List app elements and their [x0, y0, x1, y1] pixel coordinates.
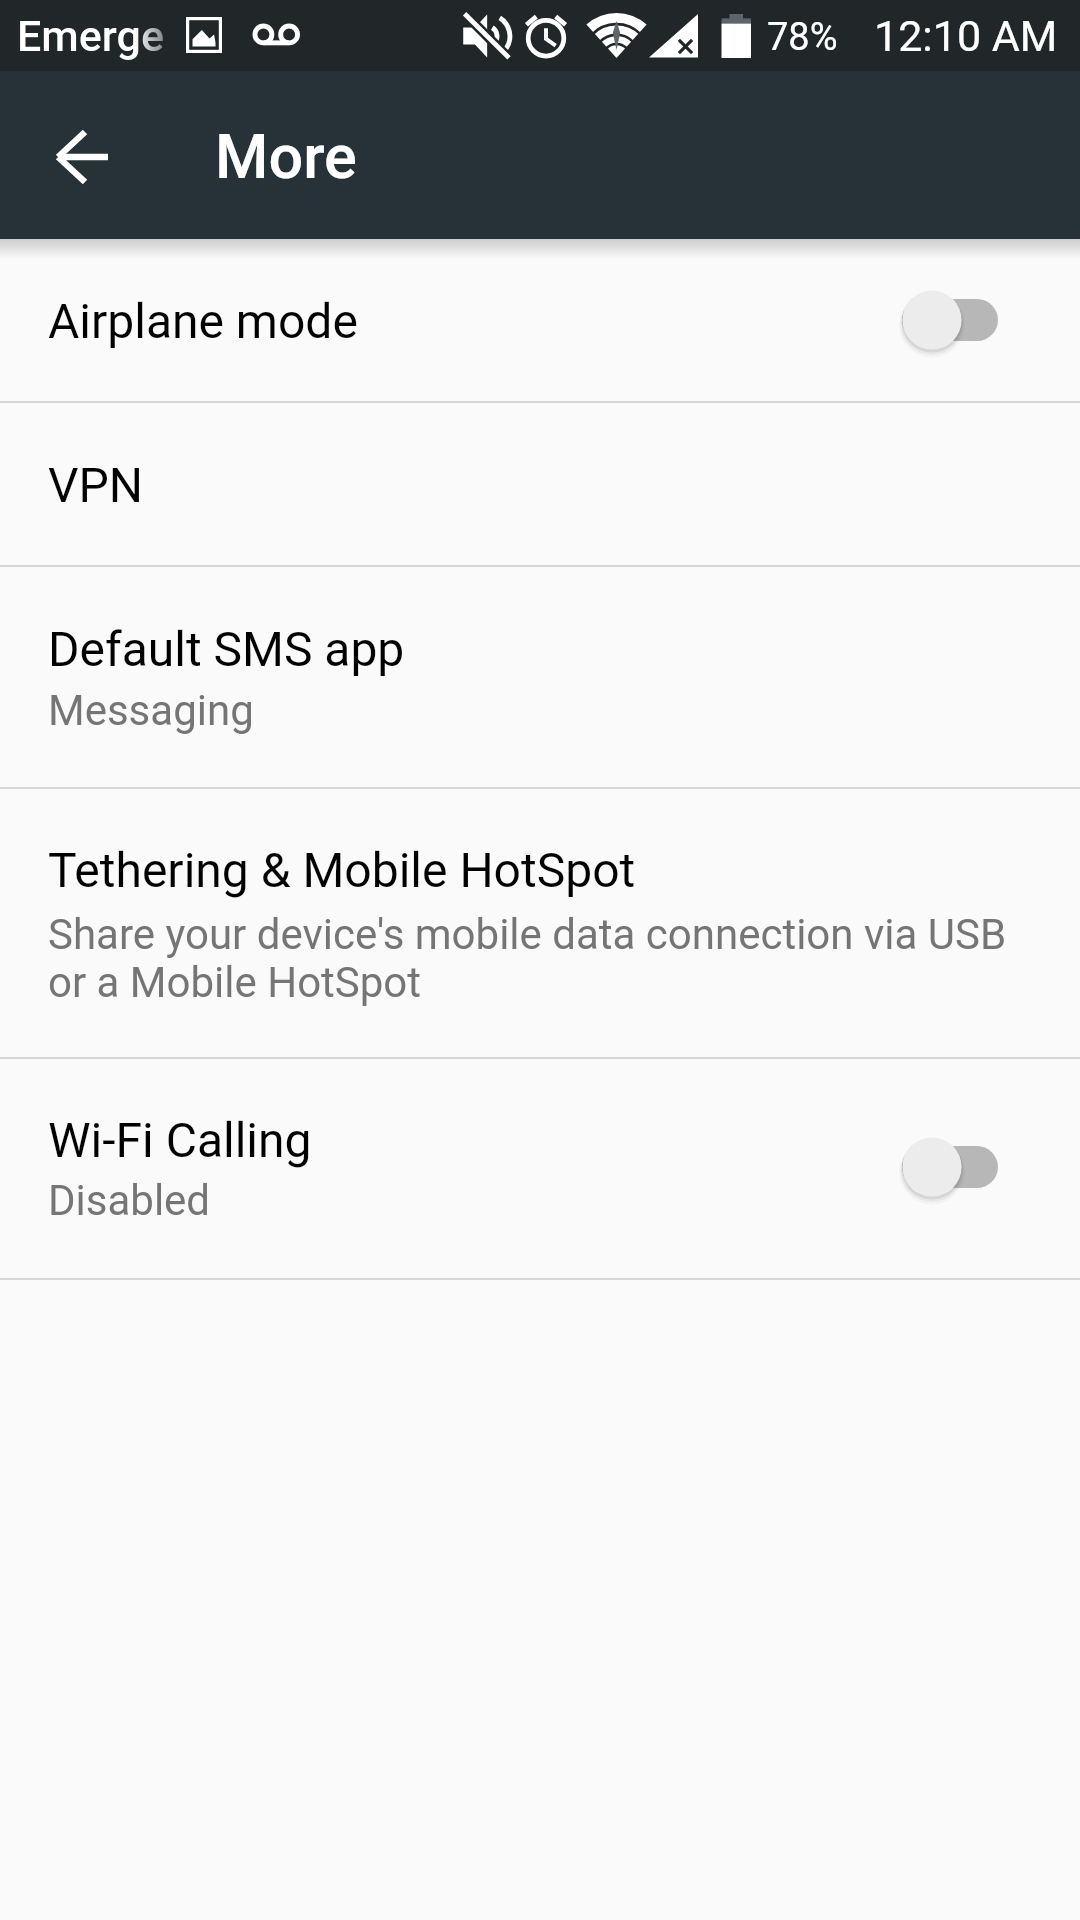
button[interactable]: Toggle: [887, 272, 1013, 368]
button[interactable]: Default SMS app: [0, 567, 1080, 787]
button[interactable]: Toggle: [887, 1119, 1013, 1215]
staticText: 12:10 AM: [874, 11, 1058, 61]
staticText: Share your device's mobile data connecti…: [48, 910, 1013, 1007]
staticText: Messaging: [48, 686, 254, 735]
staticText: More: [215, 121, 357, 192]
staticText: Default SMS app: [48, 621, 405, 677]
button[interactable]: Navigate up: [36, 111, 128, 203]
button[interactable]: Tethering & Mobile HotSpot: [0, 789, 1080, 1057]
staticText: Airplane mode: [48, 293, 358, 349]
staticText: Wi-Fi Calling: [48, 1112, 312, 1168]
staticText: 78%: [767, 15, 838, 60]
staticText: Disabled: [48, 1176, 211, 1225]
button[interactable]: Airplane mode: [0, 239, 1080, 401]
button[interactable]: Wi-Fi Calling: [0, 1059, 1080, 1278]
button[interactable]: VPN: [0, 403, 1080, 565]
staticText: Tethering & Mobile HotSpot: [48, 842, 636, 898]
staticText: Emerge: [17, 11, 164, 61]
staticText: VPN: [48, 457, 144, 513]
